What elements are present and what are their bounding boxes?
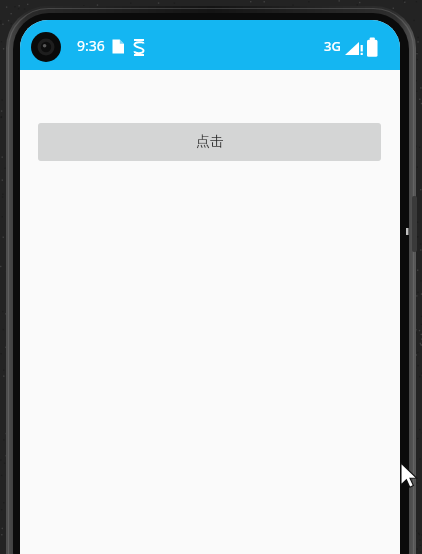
staticText: 点击 bbox=[196, 133, 224, 151]
staticText: 3G bbox=[324, 37, 341, 55]
staticText: 9:36 bbox=[77, 36, 105, 55]
button[interactable]: 点击 bbox=[38, 123, 381, 161]
